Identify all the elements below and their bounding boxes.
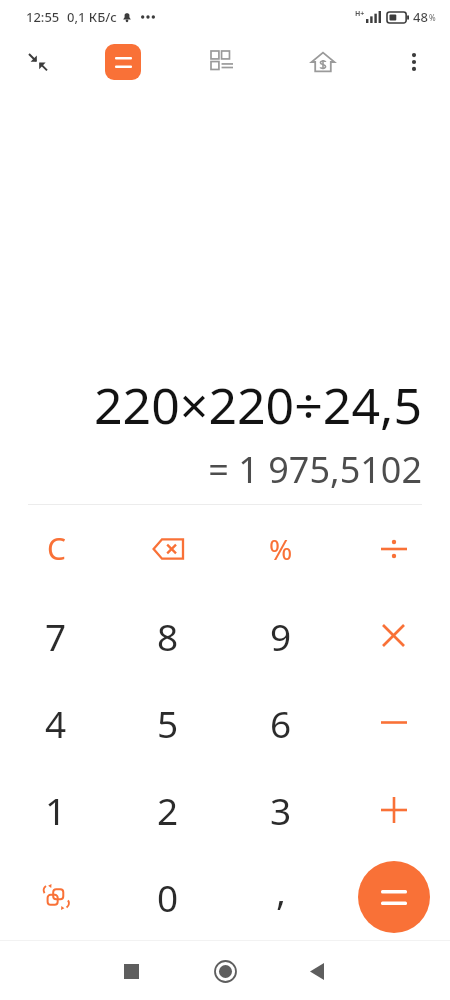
button[interactable]: 8 [112,592,224,679]
button[interactable]: Unit converter [200,40,244,84]
button[interactable]: Mortgage [300,39,346,85]
button[interactable]: 0 [112,853,224,940]
button[interactable]: Multiply [337,592,450,679]
staticText: 8 [157,611,179,661]
button[interactable]: Convert [0,853,112,940]
staticText: 4 [45,698,67,748]
staticText: 6 [270,698,292,748]
button[interactable]: Minus [337,679,450,766]
staticText: 220×220÷24,5 [28,371,422,439]
button[interactable]: Equals [358,861,430,933]
button[interactable]: Collapse [16,40,60,84]
staticText: 0,1 КБ/с [67,8,117,26]
staticText: 9 [270,611,292,661]
button[interactable]: % [224,505,337,592]
button[interactable]: , [224,853,337,940]
button[interactable]: 9 [224,592,337,679]
staticText: C [47,528,66,569]
button[interactable]: Recent apps [107,947,155,995]
staticText: % [429,12,436,23]
staticText: 1 [45,785,67,835]
button[interactable]: 6 [224,679,337,766]
staticText: 2 [157,785,179,835]
staticText: % [269,530,293,568]
button[interactable]: 7 [0,592,112,679]
button[interactable]: 1 [0,766,112,853]
staticText: = 1 975,5102 [28,445,422,494]
button[interactable]: Divide [337,505,450,592]
button[interactable]: Plus [337,766,450,853]
button[interactable]: Home [201,947,249,995]
button[interactable]: C [0,505,112,592]
button[interactable]: More options [392,40,436,84]
staticText: , [276,865,286,915]
staticText: 12:55 [26,8,60,26]
button[interactable]: 2 [112,766,224,853]
button[interactable]: 3 [224,766,337,853]
button[interactable]: Backspace [112,505,224,592]
button[interactable]: Calculator [105,44,141,80]
button[interactable]: Back [293,947,341,995]
staticText: 7 [45,611,67,661]
staticText: H+ [355,9,365,19]
button[interactable]: 5 [112,679,224,766]
staticText: 0 [157,872,179,922]
staticText: 3 [270,785,292,835]
staticText: 48 [413,8,428,26]
button[interactable]: 4 [0,679,112,766]
staticText: 5 [157,698,179,748]
